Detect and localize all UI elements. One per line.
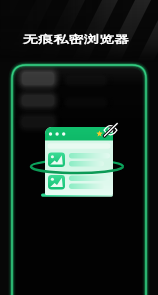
staticText: 无痕私密浏览器 [23, 33, 130, 46]
